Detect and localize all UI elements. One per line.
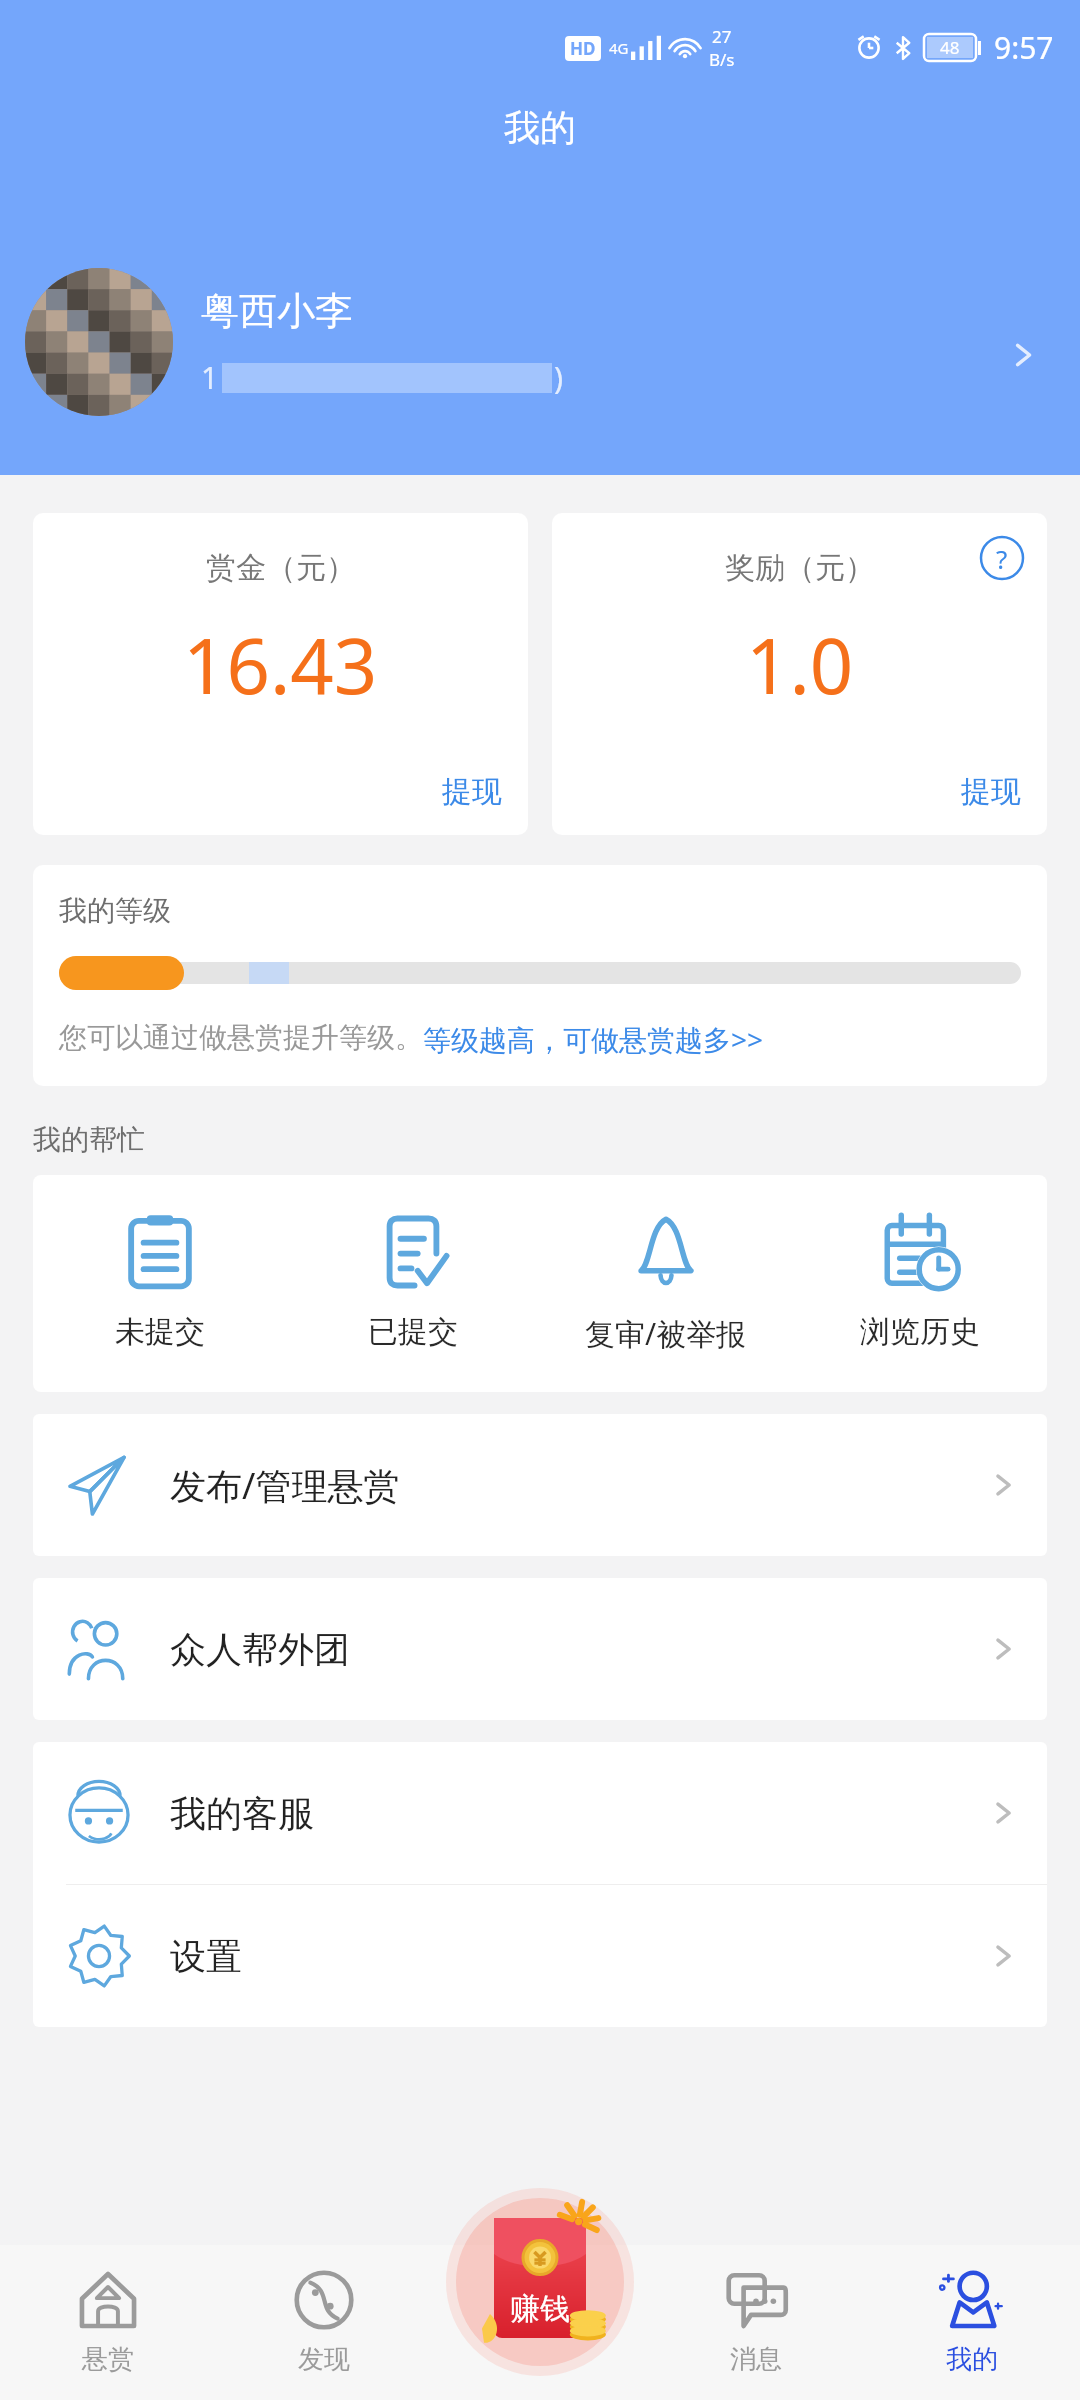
staticText: 我的帮忙	[33, 1122, 145, 1157]
staticText: )	[554, 357, 563, 398]
staticText: 27	[712, 25, 732, 48]
staticText: 复审/被举报	[585, 1313, 747, 1354]
button[interactable]: 已提交	[286, 1209, 539, 1355]
staticText: 我的	[946, 2343, 998, 2376]
staticText: 赏金（元）	[206, 549, 356, 587]
button[interactable]: 帮助	[979, 535, 1025, 581]
button[interactable]: 提现	[961, 773, 1047, 835]
staticText: 您可以通过做悬赏提升等级。	[59, 1020, 423, 1055]
staticText: 4G	[609, 38, 629, 58]
button[interactable]: 我的	[864, 2245, 1080, 2400]
button[interactable]: 复审/被举报	[539, 1209, 793, 1358]
staticText: 我的等级	[59, 893, 171, 928]
button[interactable]: 赏金（元）	[33, 513, 528, 835]
button[interactable]: 我的客服	[33, 1742, 1047, 1884]
button[interactable]: 等级越高，可做悬赏越多>>	[423, 1020, 764, 1058]
staticText: 设置	[170, 1934, 242, 1979]
staticText: 奖励（元）	[725, 549, 875, 587]
staticText: 赚钱	[510, 2290, 570, 2328]
button[interactable]: 消息	[648, 2245, 864, 2400]
staticText: 发现	[298, 2343, 350, 2376]
staticText: 1	[201, 357, 219, 398]
button[interactable]: 帮助	[552, 513, 1047, 835]
staticText: 消息	[730, 2343, 782, 2376]
staticText: 9:57	[994, 27, 1054, 68]
staticText: 粤西小李	[201, 287, 353, 335]
staticText: 众人帮外团	[170, 1627, 350, 1672]
button[interactable]: 粤西小李	[25, 268, 1080, 416]
staticText: 48	[940, 36, 960, 59]
staticText: ?	[996, 541, 1008, 576]
staticText: 16.43	[183, 613, 378, 717]
staticText: 已提交	[368, 1313, 458, 1351]
staticText: 未提交	[115, 1313, 205, 1351]
staticText: 发布/管理悬赏	[170, 1461, 400, 1510]
staticText: 我的客服	[170, 1791, 314, 1836]
button[interactable]: 设置	[33, 1885, 1047, 2027]
button[interactable]: 众人帮外团	[33, 1578, 1047, 1720]
staticText: B/s	[709, 48, 735, 71]
staticText: 悬赏	[82, 2343, 134, 2376]
button[interactable]: 发现	[216, 2245, 432, 2400]
button[interactable]: 发布/管理悬赏	[33, 1414, 1047, 1556]
button[interactable]: 悬赏	[0, 2245, 216, 2400]
button[interactable]: 赚钱	[440, 2182, 640, 2382]
staticText: 我的	[504, 105, 576, 150]
staticText: 1.0	[746, 613, 854, 717]
button[interactable]: 未提交	[33, 1209, 286, 1355]
staticText: 浏览历史	[860, 1313, 980, 1351]
button[interactable]: 提现	[442, 773, 528, 835]
button[interactable]: 浏览历史	[793, 1209, 1047, 1355]
button[interactable]: 我的等级	[33, 865, 1047, 1086]
staticText: HD	[570, 37, 596, 60]
